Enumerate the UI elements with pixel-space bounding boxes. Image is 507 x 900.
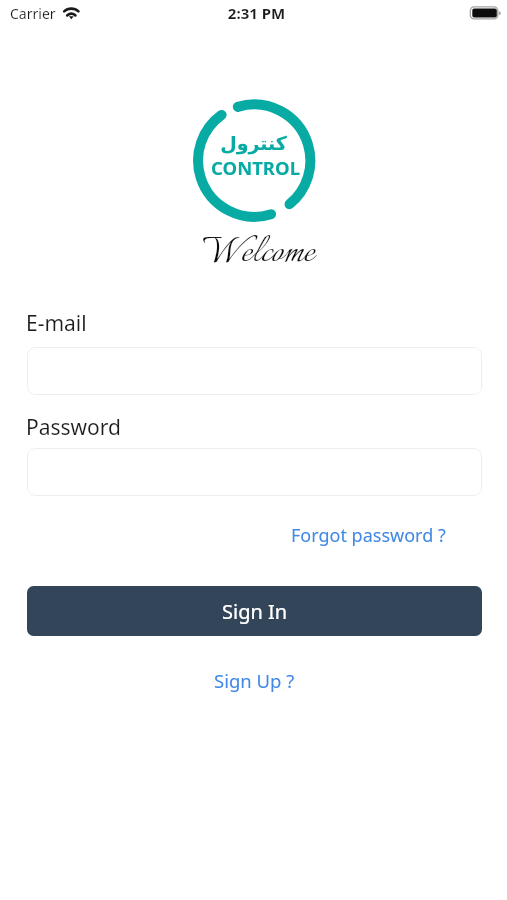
- button[interactable]: Sign Up ?: [214, 668, 295, 693]
- staticText: 2:31 PM: [3, 3, 507, 23]
- staticText: Sign Up ?: [214, 668, 295, 693]
- staticText: Forgot password ?: [291, 523, 446, 548]
- staticText: Welcome: [5, 226, 507, 280]
- staticText: Carrier: [10, 4, 56, 23]
- staticText: Password: [26, 413, 121, 442]
- button[interactable]: Forgot password ?: [291, 523, 446, 548]
- staticText: E-mail: [26, 309, 87, 338]
- staticText: CONTROL: [2, 155, 507, 180]
- button[interactable]: [27, 347, 482, 395]
- staticText: Sign In: [222, 598, 288, 625]
- staticText: كنترول: [0, 132, 507, 154]
- button[interactable]: Sign In: [27, 586, 482, 636]
- button[interactable]: [27, 448, 482, 496]
